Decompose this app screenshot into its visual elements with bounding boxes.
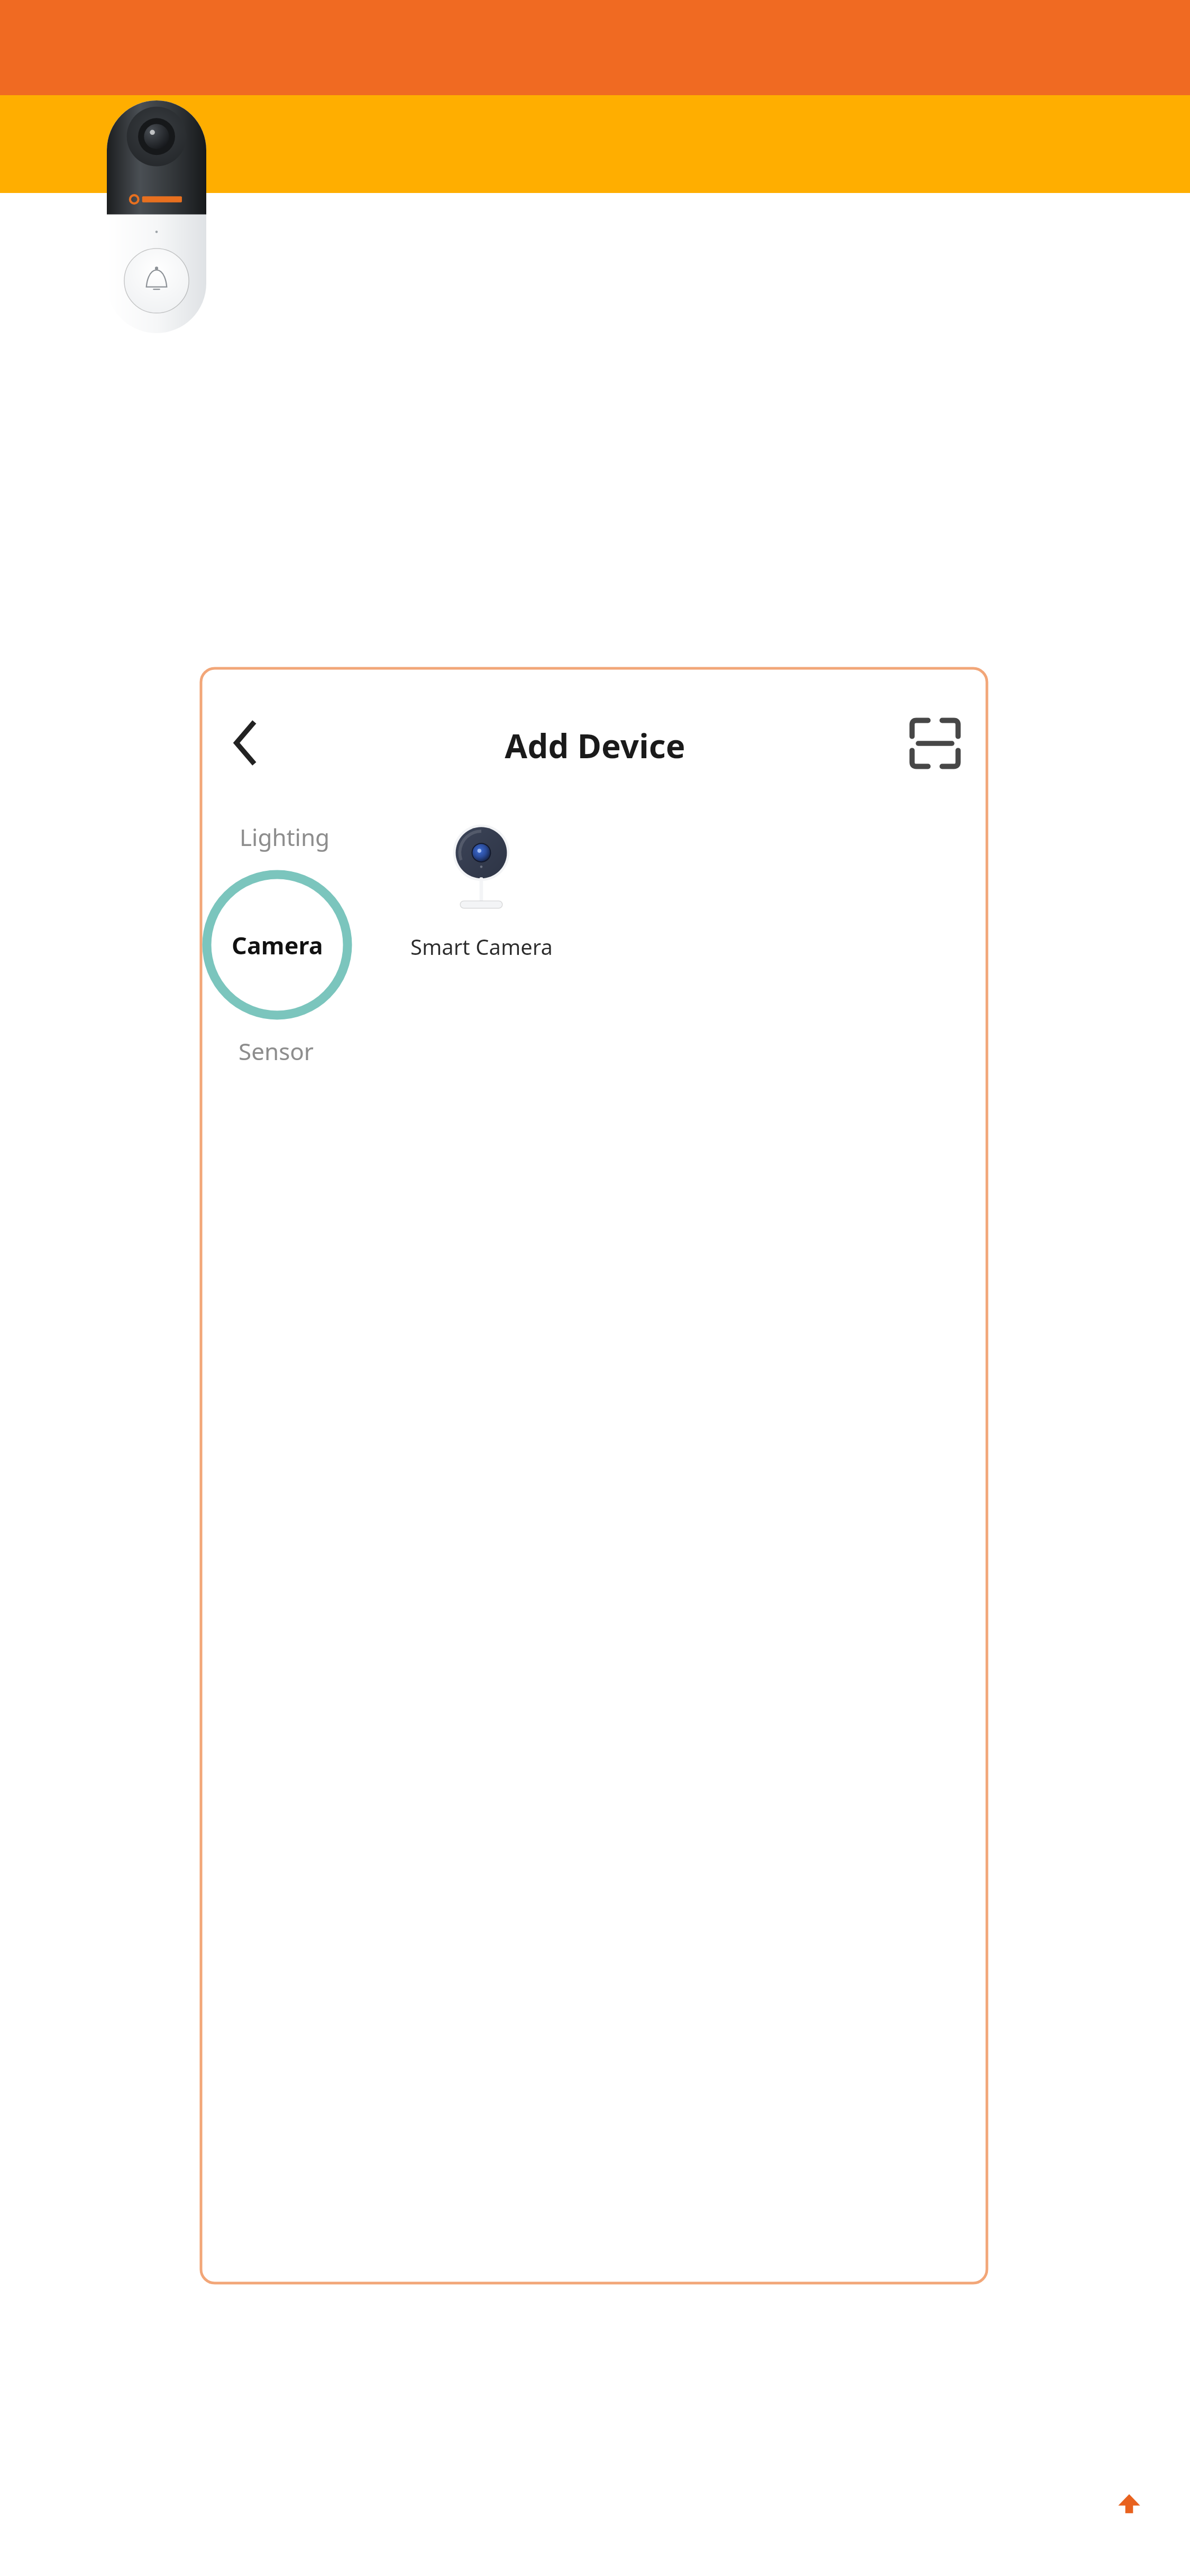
- staticText: Camera: [232, 929, 323, 961]
- button[interactable]: Scroll to top: [1106, 2485, 1152, 2531]
- button[interactable]: Scan QR code: [904, 713, 966, 774]
- button[interactable]: Back: [212, 711, 275, 775]
- staticText: Sensor: [239, 1035, 314, 1067]
- button[interactable]: Lighting: [210, 814, 359, 860]
- button[interactable]: Smart Camera: [391, 825, 571, 961]
- button[interactable]: Sensor: [202, 1028, 350, 1074]
- button[interactable]: Camera: [202, 870, 352, 1020]
- staticText: Lighting: [240, 821, 330, 853]
- staticText: Add Device: [505, 723, 685, 766]
- staticText: Smart Camera: [410, 932, 553, 961]
